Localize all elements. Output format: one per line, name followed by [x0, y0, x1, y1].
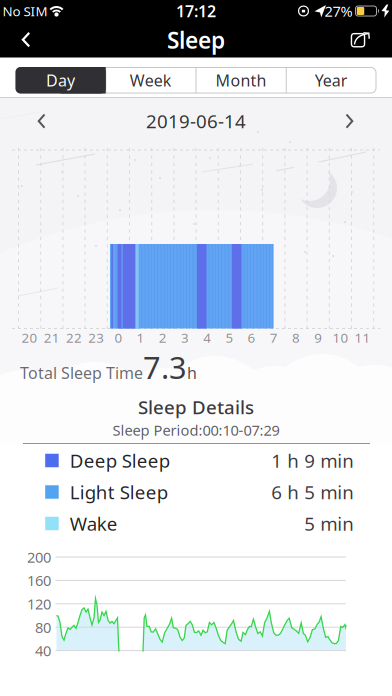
staticText: Month	[216, 70, 267, 91]
button[interactable]: Month	[196, 67, 286, 93]
staticText: h	[187, 362, 197, 383]
staticText: 8	[292, 329, 300, 346]
staticText: Year	[315, 70, 348, 91]
staticText: 6	[248, 329, 256, 346]
staticText: 9	[314, 329, 322, 346]
button[interactable]: Week	[106, 67, 196, 93]
staticText: 160	[27, 571, 51, 590]
staticText: Day	[46, 70, 75, 91]
staticText: 7.3	[143, 347, 187, 387]
staticText: 200	[27, 547, 51, 567]
staticText: Deep Sleep	[70, 448, 170, 473]
staticText: 4	[203, 329, 211, 346]
staticText: Total Sleep Time	[20, 362, 143, 383]
staticText: 17:12	[176, 0, 216, 22]
staticText: 5 min	[304, 511, 354, 536]
staticText: 23	[88, 329, 104, 346]
staticText: 2019-06-14	[146, 109, 246, 133]
staticText: 2	[159, 329, 167, 346]
button[interactable]: Year	[286, 67, 376, 93]
staticText: Sleep Details	[138, 395, 254, 419]
staticText: 1 h 9 min	[271, 448, 354, 473]
staticText: 22	[66, 329, 82, 346]
staticText: 5	[225, 329, 233, 346]
staticText: 40	[35, 641, 51, 660]
staticText: Sleep	[167, 25, 225, 55]
button[interactable]: Previous day	[21, 103, 61, 139]
staticText: No SIM	[2, 2, 47, 20]
staticText: Sleep Period:00:10-07:29	[112, 420, 279, 440]
staticText: 120	[27, 594, 51, 614]
staticText: 27%	[324, 1, 352, 21]
button[interactable]: Share	[337, 20, 381, 60]
button[interactable]: Next day	[330, 103, 370, 139]
staticText: 7	[270, 329, 278, 346]
button[interactable]: Back	[6, 20, 46, 60]
staticText: 80	[35, 617, 51, 637]
staticText: 6 h 5 min	[271, 480, 354, 504]
staticText: 10	[332, 329, 348, 346]
staticText: 21	[44, 329, 60, 346]
staticText: 11	[355, 329, 371, 346]
staticText: 20	[22, 329, 38, 346]
staticText: 0	[114, 329, 122, 346]
staticText: 1	[137, 329, 145, 346]
staticText: Week	[130, 70, 172, 91]
button[interactable]: Day	[16, 67, 106, 93]
staticText: Wake	[70, 511, 118, 536]
staticText: Light Sleep	[70, 480, 168, 504]
staticText: 3	[181, 329, 189, 346]
